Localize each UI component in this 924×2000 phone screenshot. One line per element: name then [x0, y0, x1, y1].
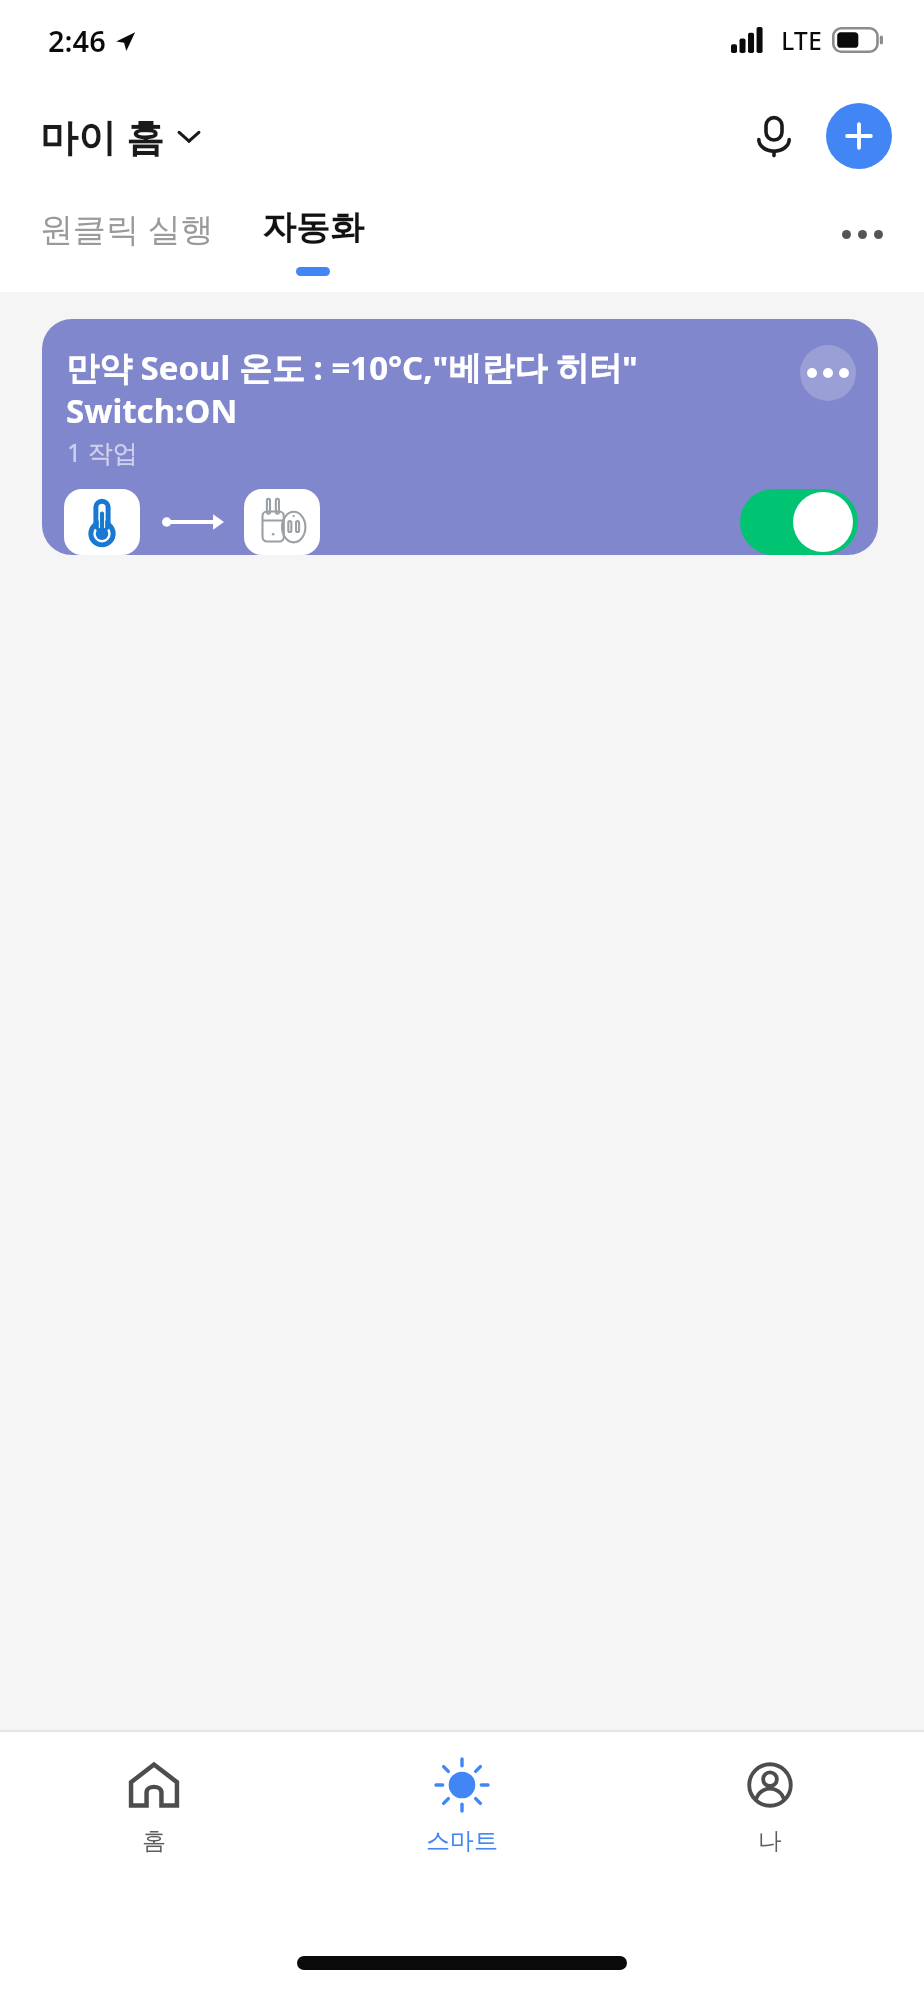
button[interactable]: 원클릭 실행	[26, 198, 228, 259]
staticText: 자동화	[262, 206, 364, 249]
button[interactable]: 홈	[0, 1732, 308, 1940]
button[interactable]: Add	[826, 103, 892, 169]
button[interactable]: Automation enabled toggle	[740, 489, 858, 555]
button[interactable]: 나	[616, 1732, 924, 1940]
button[interactable]: Automation options	[800, 345, 856, 401]
staticText: 2:46	[48, 21, 106, 60]
staticText: 나	[758, 1826, 782, 1856]
staticText: 만약 Seoul 온도 : =10°C,"베란다 히터" Switch:ON	[66, 345, 786, 433]
staticText: 스마트	[426, 1826, 498, 1856]
button[interactable]: 자동화	[248, 198, 378, 257]
staticText: LTE	[781, 23, 822, 57]
button[interactable]: Voice input	[738, 100, 810, 172]
staticText: 1 작업	[67, 435, 138, 469]
staticText: 마이 홈	[40, 110, 164, 162]
staticText: 원클릭 실행	[40, 206, 214, 251]
staticText: 홈	[142, 1826, 166, 1856]
button[interactable]: 만약 Seoul 온도 : =10°C,"베란다 히터" Switch:ON	[42, 319, 878, 555]
button[interactable]: 스마트	[308, 1732, 616, 1940]
button[interactable]: More options	[828, 200, 896, 268]
button[interactable]: 마이 홈	[36, 104, 206, 168]
